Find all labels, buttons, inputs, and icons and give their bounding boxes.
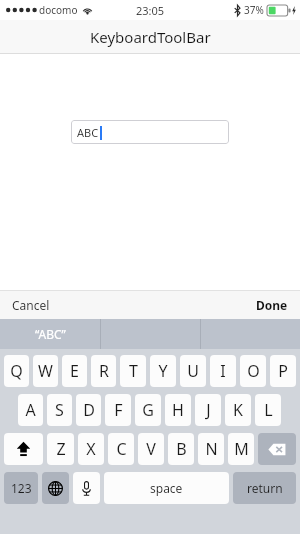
button[interactable]: A (18, 394, 43, 426)
button[interactable]: Dictation (73, 472, 100, 504)
button[interactable]: B (168, 433, 194, 465)
staticText: KeyboardToolBar (90, 27, 211, 47)
staticText: Q (10, 360, 23, 382)
button[interactable]: P (270, 355, 296, 387)
staticText: X (86, 438, 96, 460)
button[interactable]: space (104, 472, 229, 504)
staticText: G (142, 399, 154, 421)
staticText: W (38, 360, 53, 382)
button[interactable]: L (255, 394, 281, 426)
staticText: Done (256, 297, 288, 313)
staticText: V (146, 438, 156, 460)
button[interactable]: I (210, 355, 236, 387)
staticText: N (205, 438, 218, 460)
staticText: space (150, 480, 183, 496)
button[interactable]: Switch keyboard (42, 472, 69, 504)
staticText: return (247, 480, 283, 496)
button[interactable]: Q (4, 355, 29, 387)
button[interactable]: V (138, 433, 164, 465)
button[interactable]: Backspace (258, 433, 296, 465)
button[interactable]: Z (47, 433, 74, 465)
button[interactable]: X (78, 433, 104, 465)
staticText: K (233, 399, 243, 421)
button[interactable]: E (62, 355, 87, 387)
button[interactable]: T (120, 355, 146, 387)
button[interactable]: “ABC” (0, 319, 100, 349)
staticText: T (129, 360, 138, 382)
staticText: M (234, 438, 249, 460)
staticText: C (116, 438, 127, 460)
staticText: U (187, 360, 199, 382)
button[interactable]: N (198, 433, 224, 465)
staticText: 37% (244, 3, 264, 17)
staticText: A (25, 399, 36, 421)
button[interactable]: K (225, 394, 251, 426)
staticText: P (278, 360, 288, 382)
button[interactable]: F (105, 394, 131, 426)
staticText: R (99, 360, 109, 382)
button[interactable]: G (135, 394, 161, 426)
staticText: 23:05 (136, 3, 165, 18)
button[interactable]: Y (150, 355, 176, 387)
button[interactable]: return (233, 472, 296, 504)
button[interactable]: H (165, 394, 191, 426)
staticText: ABC (77, 125, 99, 140)
staticText: L (264, 399, 273, 421)
staticText: B (176, 438, 187, 460)
staticText: D (83, 399, 95, 421)
staticText: docomo (39, 3, 78, 17)
button[interactable]: D (76, 394, 101, 426)
staticText: Y (158, 360, 168, 382)
staticText: J (206, 399, 211, 421)
button[interactable]: J (195, 394, 221, 426)
button[interactable]: S (47, 394, 72, 426)
staticText: E (70, 360, 79, 382)
staticText: 123 (11, 480, 32, 496)
button[interactable]: Cancel (12, 291, 50, 319)
button[interactable]: Done (256, 291, 288, 319)
button[interactable]: O (240, 355, 266, 387)
button[interactable]: 123 (4, 472, 38, 504)
staticText: H (172, 399, 184, 421)
button[interactable]: R (91, 355, 116, 387)
button[interactable]: U (180, 355, 206, 387)
button[interactable]: M (228, 433, 254, 465)
staticText: Z (56, 438, 66, 460)
button[interactable]: Shift (4, 433, 43, 465)
staticText: Cancel (12, 297, 50, 313)
staticText: F (114, 399, 123, 421)
staticText: “ABC” (35, 326, 66, 342)
button[interactable]: ABC (71, 120, 229, 144)
staticText: O (247, 360, 260, 382)
button[interactable]: C (108, 433, 134, 465)
staticText: S (55, 399, 64, 421)
staticText: I (220, 360, 226, 382)
button[interactable]: W (33, 355, 58, 387)
